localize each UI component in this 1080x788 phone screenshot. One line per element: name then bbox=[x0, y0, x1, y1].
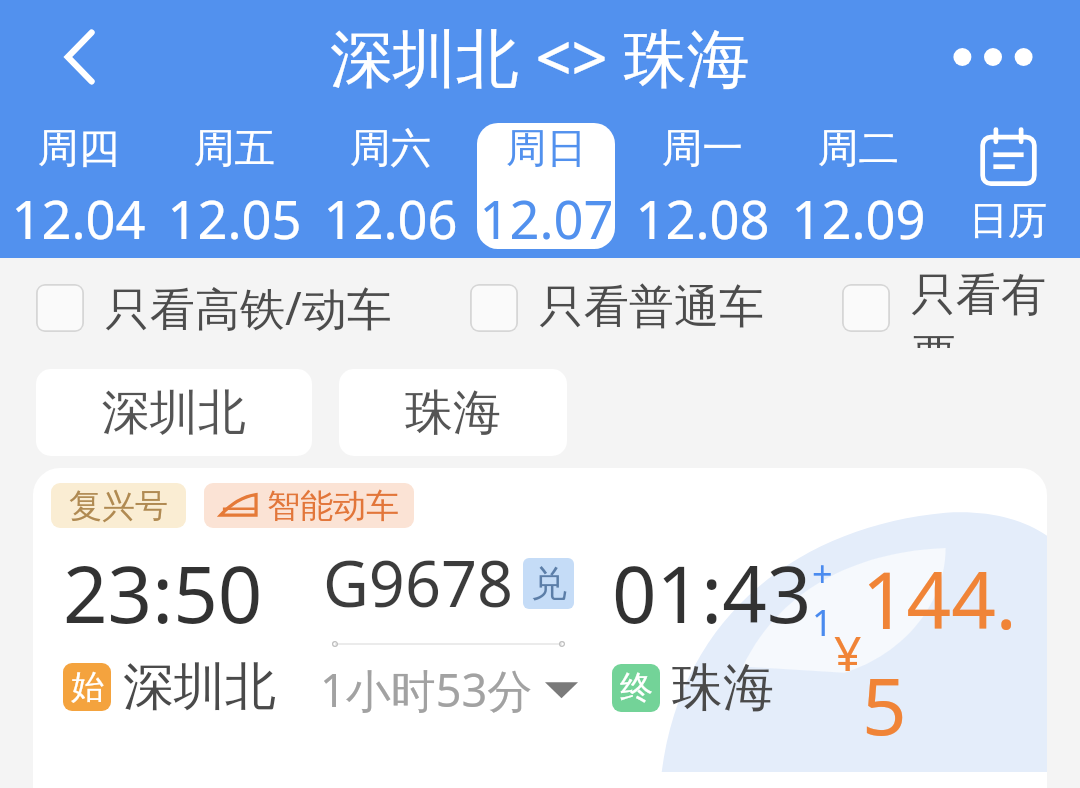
staticText: 深圳北 bbox=[102, 383, 246, 443]
button[interactable]: 只看普通车 bbox=[470, 270, 764, 345]
staticText: 珠海 bbox=[672, 656, 774, 720]
staticText: 兑 bbox=[531, 561, 567, 606]
staticText: 23:50 bbox=[63, 540, 263, 646]
button[interactable]: Calendar bbox=[936, 114, 1080, 258]
staticText: 周五 bbox=[194, 123, 275, 174]
staticText: 周二 bbox=[818, 123, 899, 174]
staticText: 12.08 bbox=[635, 183, 770, 249]
staticText: 只看高铁/动车 bbox=[105, 277, 392, 338]
staticText: ¥ bbox=[834, 620, 862, 685]
staticText: 深圳北 <> 珠海 bbox=[330, 14, 750, 100]
staticText: +1 bbox=[812, 549, 834, 647]
staticText: 日历 bbox=[969, 196, 1047, 245]
button[interactable]: 周日 bbox=[477, 123, 615, 249]
button[interactable]: 周一 bbox=[633, 123, 771, 249]
button[interactable]: 珠海 bbox=[339, 369, 567, 456]
staticText: 智能动车 bbox=[267, 485, 399, 527]
staticText: 12.07 bbox=[479, 183, 614, 249]
button[interactable]: 只看有票 bbox=[842, 258, 1080, 357]
staticText: 只看有票 bbox=[911, 267, 1080, 348]
staticText: 周四 bbox=[38, 123, 119, 174]
staticText: 12.05 bbox=[167, 183, 302, 249]
staticText: 周日 bbox=[506, 123, 587, 174]
button[interactable]: 周二 bbox=[789, 123, 927, 249]
button[interactable]: 复兴号 bbox=[33, 468, 1047, 788]
staticText: 12.04 bbox=[11, 183, 146, 249]
button[interactable]: 周五 bbox=[165, 123, 303, 249]
staticText: 144.5 bbox=[862, 546, 1047, 758]
staticText: 周六 bbox=[350, 123, 431, 174]
staticText: 终 bbox=[620, 667, 653, 709]
button[interactable]: 深圳北 bbox=[36, 369, 312, 456]
button[interactable]: 周四 bbox=[9, 123, 147, 249]
staticText: G9678 bbox=[323, 540, 514, 626]
staticText: 1小时53分 bbox=[320, 659, 533, 720]
staticText: 始 bbox=[71, 666, 104, 708]
button[interactable]: 只看高铁/动车 bbox=[36, 268, 392, 347]
button[interactable]: More options bbox=[930, 0, 1056, 114]
staticText: 深圳北 bbox=[123, 655, 276, 719]
staticText: 12.06 bbox=[323, 183, 458, 249]
staticText: 复兴号 bbox=[69, 485, 168, 527]
button[interactable]: Back bbox=[18, 0, 144, 114]
staticText: 只看普通车 bbox=[539, 279, 764, 336]
staticText: 12.09 bbox=[791, 183, 926, 249]
staticText: 珠海 bbox=[405, 383, 501, 443]
staticText: 周一 bbox=[662, 123, 743, 174]
staticText: 01:43 bbox=[612, 540, 812, 646]
button[interactable]: 周六 bbox=[321, 123, 459, 249]
